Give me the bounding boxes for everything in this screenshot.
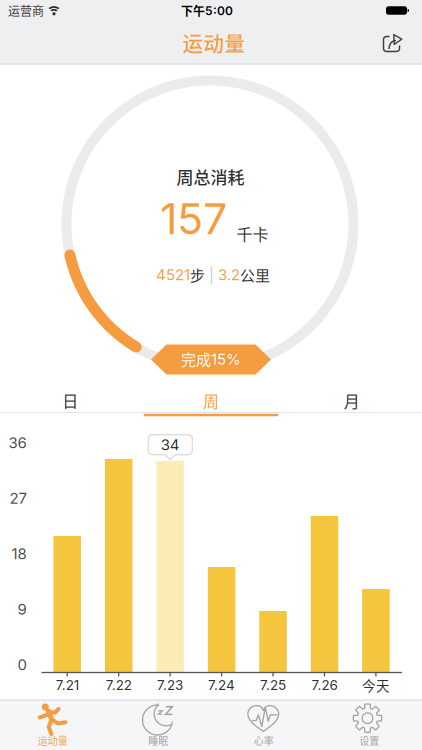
staticText: 0 bbox=[17, 656, 26, 674]
staticText: 7.22 bbox=[106, 677, 132, 693]
staticText: 7.21 bbox=[56, 677, 79, 693]
staticText: 运动量 bbox=[182, 28, 245, 57]
staticText: 7.25 bbox=[260, 677, 286, 693]
staticText: 下午5:00 bbox=[181, 2, 233, 19]
staticText: 完成15% bbox=[181, 348, 241, 370]
staticText: 36 bbox=[8, 434, 26, 452]
staticText: 睡眠 bbox=[148, 733, 168, 748]
staticText: 周 bbox=[203, 389, 219, 412]
staticText: 设置 bbox=[359, 733, 379, 748]
staticText: 今天 bbox=[362, 675, 390, 695]
staticText: 步 bbox=[190, 264, 205, 286]
staticText: 月 bbox=[344, 389, 360, 412]
staticText: 千卡 bbox=[236, 222, 268, 245]
staticText: 心率 bbox=[254, 733, 274, 748]
staticText: 4521 bbox=[156, 266, 190, 284]
staticText: 157 bbox=[160, 192, 227, 244]
staticText: 7.24 bbox=[208, 677, 235, 693]
staticText: 7.23 bbox=[157, 677, 183, 693]
staticText: 18 bbox=[11, 545, 26, 563]
staticText: 运营商 bbox=[8, 2, 44, 19]
staticText: 7.26 bbox=[311, 677, 337, 693]
staticText: 34 bbox=[161, 436, 180, 454]
staticText: 运动量 bbox=[38, 733, 68, 748]
staticText: 周总消耗 bbox=[176, 164, 244, 189]
staticText: 日 bbox=[62, 389, 78, 412]
staticText: | bbox=[205, 266, 218, 284]
staticText: 3.2 bbox=[218, 266, 240, 284]
staticText: 27 bbox=[9, 489, 26, 507]
staticText: 公里 bbox=[240, 264, 270, 286]
staticText: 9 bbox=[17, 600, 26, 618]
